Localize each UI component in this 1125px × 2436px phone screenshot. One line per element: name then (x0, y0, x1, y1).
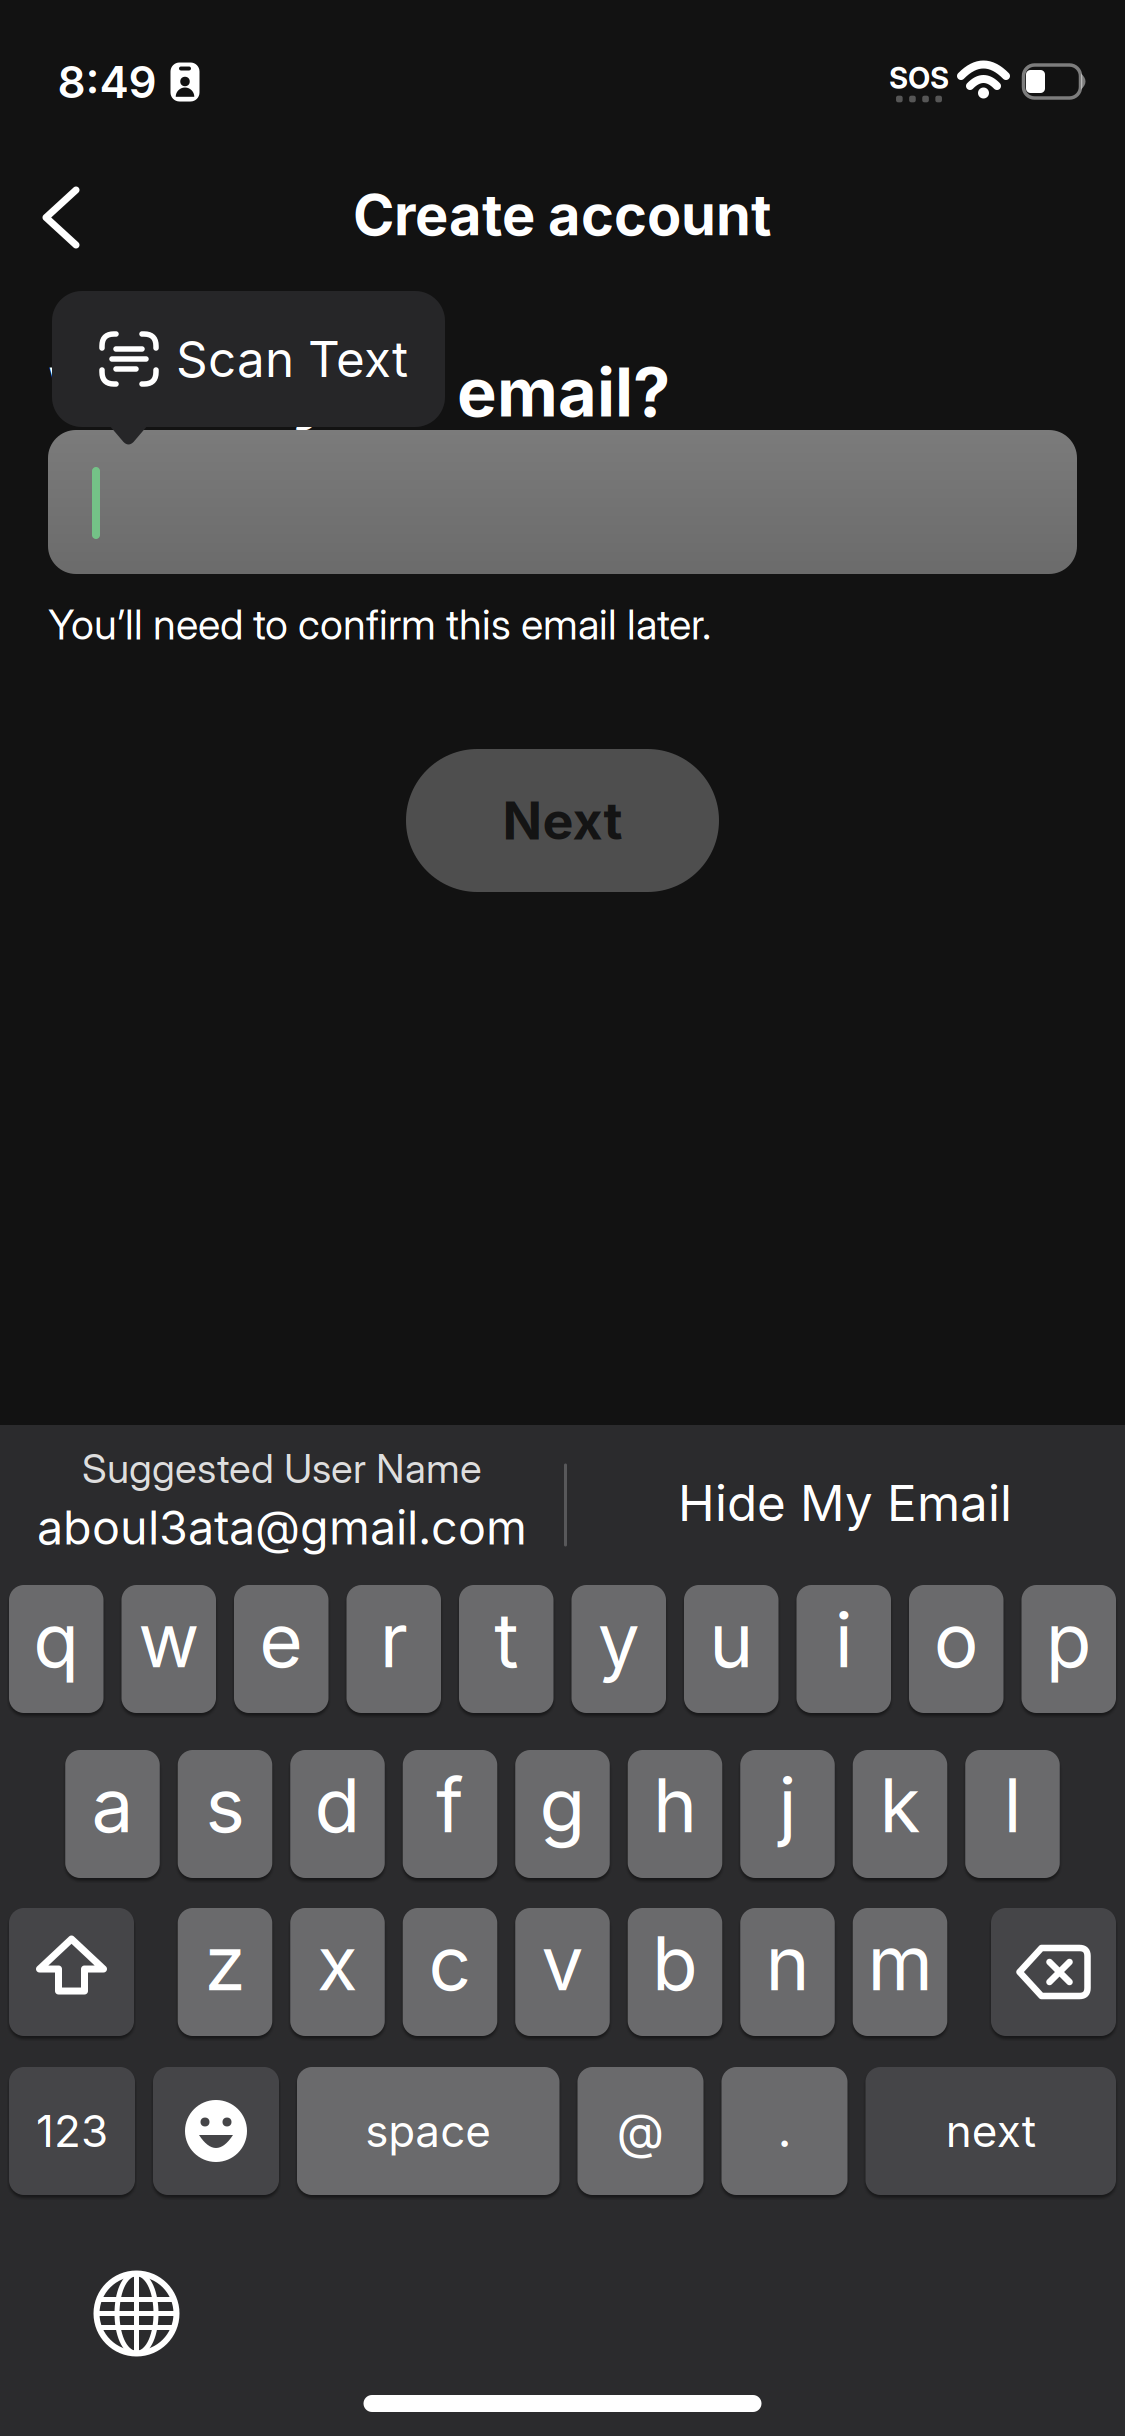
button[interactable]: u (684, 1585, 778, 1713)
button[interactable]: 123 (9, 2067, 135, 2195)
button[interactable]: Next keyboard (81, 2258, 191, 2368)
button[interactable]: Back (21, 177, 101, 257)
staticText: z (204, 1919, 245, 2007)
button[interactable]: Hide My Email (595, 1433, 1095, 1573)
staticText: k (879, 1761, 920, 1849)
staticText: x (317, 1919, 358, 2007)
button[interactable]: o (909, 1585, 1003, 1713)
button[interactable]: @ (577, 2067, 703, 2195)
button[interactable]: Scan Text (52, 291, 445, 427)
button[interactable]: g (515, 1750, 610, 1878)
staticText: a (91, 1761, 133, 1849)
staticText: . (777, 2100, 791, 2158)
button[interactable]: l (965, 1750, 1060, 1878)
button[interactable]: q (9, 1585, 103, 1713)
staticText: i (835, 1596, 853, 1684)
staticText: n (765, 1919, 809, 2007)
button[interactable]: Suggested User Name (2, 1420, 562, 1580)
button[interactable]: Shift (9, 1908, 134, 2036)
staticText: Create account (353, 182, 772, 248)
staticText: Hide My Email (678, 1474, 1012, 1532)
staticText: l (1003, 1761, 1021, 1849)
staticText: Next (502, 790, 622, 851)
staticText: What’s your email? (48, 353, 670, 432)
button[interactable]: s (178, 1750, 272, 1878)
staticText: aboul3ata@gmail.com (37, 1500, 527, 1555)
staticText: 123 (36, 2105, 108, 2157)
button[interactable]: b (628, 1908, 722, 2036)
button[interactable]: z (178, 1908, 272, 2036)
button[interactable]: . (721, 2067, 847, 2195)
staticText: b (652, 1919, 698, 2007)
staticText: @ (616, 2102, 664, 2160)
staticText: 8:49 (57, 56, 156, 108)
button[interactable]: f (403, 1750, 497, 1878)
staticText: s (205, 1761, 244, 1849)
staticText: r (380, 1596, 408, 1684)
button[interactable]: Next (406, 749, 719, 892)
button[interactable]: Emoji (153, 2067, 279, 2195)
staticText: u (709, 1596, 753, 1684)
button[interactable]: space (297, 2067, 559, 2195)
button[interactable]: x (290, 1908, 385, 2036)
button[interactable]: k (853, 1750, 947, 1878)
button[interactable]: r (346, 1585, 441, 1713)
button[interactable]: next (865, 2067, 1116, 2195)
button[interactable]: j (740, 1750, 835, 1878)
button[interactable]: w (121, 1585, 216, 1713)
button[interactable]: v (515, 1908, 610, 2036)
button[interactable]: t (459, 1585, 553, 1713)
staticText: e (259, 1596, 303, 1684)
staticText: v (541, 1919, 583, 2007)
staticText: You’ll need to confirm this email later. (48, 600, 711, 649)
staticText: SOS (889, 61, 949, 95)
staticText: c (428, 1919, 471, 2007)
button[interactable]: a (65, 1750, 160, 1878)
staticText: w (138, 1596, 199, 1684)
button[interactable]: c (403, 1908, 497, 2036)
staticText: h (653, 1761, 697, 1849)
staticText: space (365, 2105, 491, 2157)
button[interactable]: h (628, 1750, 722, 1878)
button[interactable]: p (1021, 1585, 1116, 1713)
staticText: Scan Text (176, 330, 408, 388)
staticText: Suggested User Name (82, 1445, 482, 1492)
button[interactable]: i (796, 1585, 891, 1713)
staticText: d (314, 1761, 360, 1849)
staticText: f (436, 1761, 464, 1849)
button[interactable]: e (234, 1585, 328, 1713)
button[interactable]: Email (48, 430, 1077, 574)
staticText: p (1046, 1596, 1092, 1684)
button[interactable]: d (290, 1750, 385, 1878)
button[interactable]: n (740, 1908, 835, 2036)
staticText: j (778, 1761, 796, 1849)
staticText: q (33, 1596, 79, 1684)
staticText: m (867, 1919, 932, 2007)
staticText: y (598, 1596, 640, 1684)
button[interactable]: m (853, 1908, 947, 2036)
button[interactable]: y (571, 1585, 666, 1713)
staticText: next (946, 2105, 1036, 2157)
staticText: g (539, 1761, 585, 1849)
button[interactable]: Delete (991, 1908, 1116, 2036)
staticText: t (494, 1596, 518, 1684)
staticText: o (934, 1596, 979, 1684)
